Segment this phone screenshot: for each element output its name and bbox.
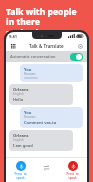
staticText: Press to speak (14, 172, 27, 180)
staticText: Russian (24, 72, 36, 76)
staticText: Talk with people in there (6, 6, 87, 27)
staticText: Comment vas-tu (24, 120, 57, 125)
button[interactable]: Swap languages (35, 164, 58, 171)
button[interactable]: Press to speak (58, 161, 87, 180)
staticText: 9:41 (9, 34, 17, 39)
staticText: English (13, 92, 24, 96)
button[interactable]: Settings (76, 42, 84, 50)
button[interactable]: Automatic conversation (6, 51, 87, 62)
staticText: Hello (13, 97, 24, 102)
staticText: English (13, 138, 24, 142)
button[interactable]: Orleans (9, 84, 73, 105)
staticText: Press to speak (66, 172, 79, 180)
button[interactable]: You (20, 107, 83, 128)
staticText: I am good (13, 143, 33, 148)
staticText: You (24, 110, 32, 115)
staticText: You (24, 67, 32, 72)
staticText: native language (6, 27, 76, 39)
button[interactable]: Menu (9, 42, 17, 50)
staticText: Russian (24, 115, 36, 119)
staticText: Automatic conversation (10, 54, 56, 59)
button[interactable]: You (20, 64, 83, 82)
button[interactable]: Press to speak (6, 161, 35, 180)
staticText: Orleans (13, 133, 29, 138)
staticText: Talk & Translate (29, 43, 64, 49)
button[interactable]: Orleans (9, 130, 73, 151)
staticText: Orleans (13, 87, 29, 92)
